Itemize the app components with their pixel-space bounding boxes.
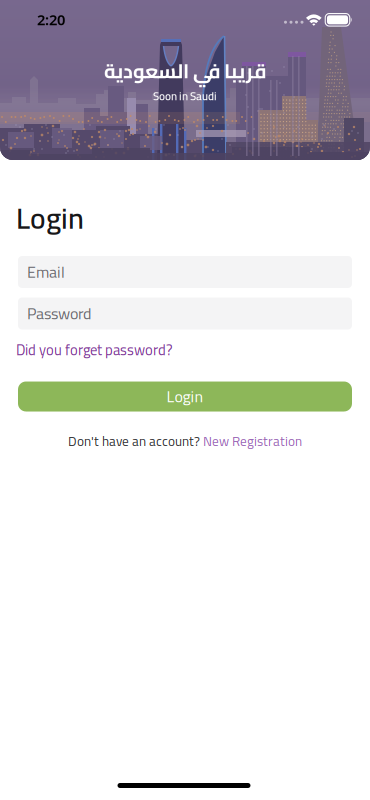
button[interactable]: Login — [18, 381, 352, 411]
staticText: Email — [27, 257, 65, 287]
staticText: 2:20 — [37, 10, 65, 29]
button[interactable]: New Registration — [203, 428, 302, 453]
staticText: Login — [166, 381, 203, 411]
staticText: Did you forget password? — [16, 336, 173, 364]
staticText: New Registration — [203, 428, 302, 453]
staticText: Password — [27, 298, 91, 328]
staticText: قريبا في السعودية — [103, 52, 266, 90]
button[interactable]: Did you forget password? — [16, 336, 173, 364]
staticText: Login — [16, 190, 84, 245]
staticText: Don't have an account? — [68, 428, 200, 453]
staticText: Soon in Saudi — [153, 85, 217, 107]
